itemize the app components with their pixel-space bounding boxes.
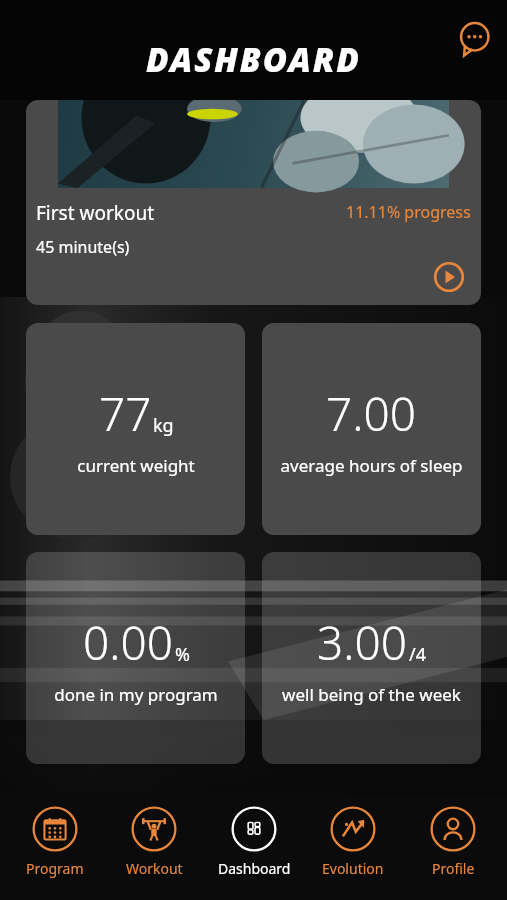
button[interactable]: 3.00 [262,552,481,764]
staticText: average hours of sleep [280,454,463,477]
button[interactable]: Workout [109,804,199,878]
staticText: done in my program [54,683,218,706]
button[interactable]: Program [10,804,100,878]
button[interactable]: First workout [26,100,481,305]
staticText: well being of the week [282,683,461,706]
button[interactable]: Start workout [433,261,465,293]
staticText: Dashboard [218,859,291,878]
button[interactable]: Dashboard [209,804,299,878]
staticText: 3.00 [317,611,408,674]
staticText: 0.00 [83,611,174,674]
staticText: Workout [126,859,183,878]
button[interactable]: 77 [26,323,245,535]
staticText: 7.00 [326,382,417,445]
button[interactable]: Messages [455,20,493,58]
button[interactable]: 0.00 [26,552,245,764]
staticText: /4 [409,642,426,667]
staticText: % [175,642,190,667]
staticText: First workout [36,200,155,226]
staticText: Evolution [322,859,384,878]
button[interactable]: Evolution [308,804,398,878]
staticText: Program [26,859,84,878]
button[interactable]: 7.00 [262,323,481,535]
staticText: DASHBOARD [146,37,361,82]
staticText: kg [153,413,174,438]
staticText: 77 [99,382,152,445]
staticText: 45 minute(s) [36,236,130,258]
button[interactable]: Profile [408,804,498,878]
staticText: 11.11% progress [346,201,471,223]
staticText: Profile [432,859,475,878]
staticText: current weight [77,454,195,477]
